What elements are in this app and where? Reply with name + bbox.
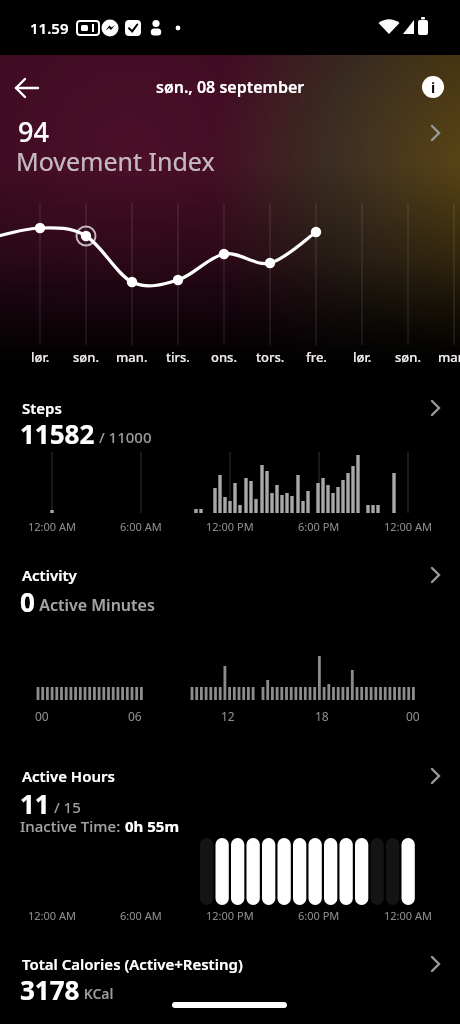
staticText: 12:00 AM [384, 908, 432, 923]
button[interactable]: Steps [0, 394, 460, 540]
staticText: 11.59 [30, 18, 69, 38]
staticText: KCal [80, 984, 114, 1003]
staticText: lør. [31, 348, 50, 366]
staticText: Active Minutes [35, 594, 155, 616]
staticText: 0h 55m [125, 816, 180, 836]
staticText: Steps [22, 398, 62, 418]
staticText: Activity [22, 565, 77, 585]
staticText: ons. [211, 348, 237, 366]
button[interactable]: i [419, 73, 447, 101]
staticText: 00 [406, 708, 420, 724]
staticText: man. [438, 348, 460, 366]
staticText: søn., 08 september [156, 76, 305, 98]
staticText: i [431, 78, 436, 97]
staticText: 6:00 AM [120, 519, 162, 534]
staticText: Inactive Time: [20, 816, 125, 836]
staticText: 6:00 PM [298, 908, 340, 923]
staticText: 12:00 AM [384, 519, 432, 534]
staticText: tors. [256, 348, 285, 366]
staticText: man. [116, 348, 148, 366]
staticText: Active Hours [22, 766, 115, 786]
staticText: 11582 [20, 416, 95, 451]
button[interactable]: Active Hours [0, 762, 460, 928]
staticText: / 11000 [95, 427, 152, 447]
staticText: søn. [73, 348, 99, 366]
staticText: 12 [221, 708, 235, 724]
staticText: 6:00 PM [298, 519, 340, 534]
staticText: 11 [20, 786, 50, 821]
staticText: Movement Index [16, 144, 215, 178]
staticText: Total Calories (Active+Resting) [22, 954, 243, 974]
staticText: 3178 [20, 972, 80, 1007]
button[interactable]: Total Calories (Active+Resting) [0, 950, 460, 1005]
staticText: 0 [20, 584, 35, 619]
staticText: tirs. [166, 348, 190, 366]
staticText: 12:00 PM [206, 908, 254, 923]
staticText: 6:00 AM [120, 908, 162, 923]
staticText: 94 [18, 113, 49, 150]
staticText: 18 [315, 708, 329, 724]
button[interactable]: 94 [0, 110, 460, 182]
staticText: 12:00 PM [206, 519, 254, 534]
staticText: lør. [353, 348, 372, 366]
staticText: søn. [395, 348, 421, 366]
staticText: fre. [306, 348, 327, 366]
button[interactable]: Activity [0, 560, 460, 728]
staticText: 12:00 AM [28, 519, 76, 534]
staticText: 00 [35, 708, 49, 724]
staticText: / 15 [50, 797, 81, 817]
staticText: 12:00 AM [28, 908, 76, 923]
button[interactable] [8, 69, 46, 107]
staticText: 06 [128, 708, 142, 724]
